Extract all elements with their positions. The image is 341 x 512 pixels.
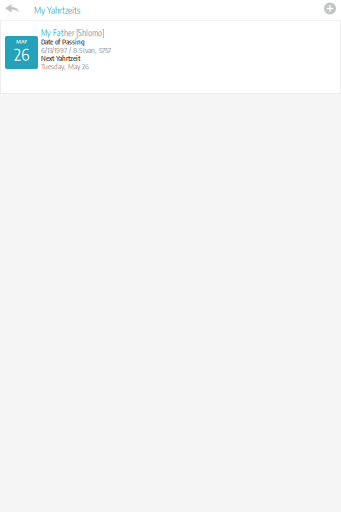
button[interactable]: Back: [5, 0, 19, 20]
staticText: 6/13/1997 / 8 Sivan, 5757: [41, 45, 111, 55]
staticText: 26: [14, 43, 29, 64]
staticText: Next Yahrtzeit: [41, 54, 80, 63]
staticText: My Yahrtzeits: [34, 4, 80, 16]
button[interactable]: Add: [324, 0, 336, 20]
staticText: My Father [Shlomo]: [41, 28, 104, 38]
staticText: Tuesday, May 26: [41, 62, 89, 71]
staticText: MAY: [16, 38, 27, 45]
button[interactable]: My Yahrtzeits: [34, 0, 80, 20]
staticText: Date of Passing: [41, 37, 85, 46]
button[interactable]: MAY: [0, 21, 341, 94]
